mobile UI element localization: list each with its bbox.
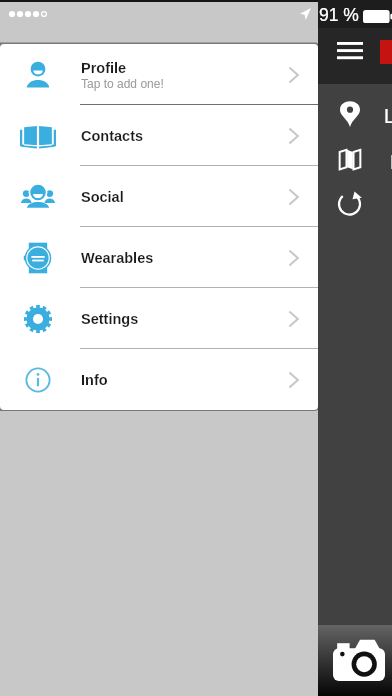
button[interactable]: Wearables: [0, 227, 318, 288]
staticText: Tap to add one!: [81, 77, 164, 90]
button[interactable]: Settings: [0, 288, 318, 349]
staticText: Profile: [81, 60, 127, 76]
staticText: Info: [81, 372, 108, 388]
button[interactable]: Map: [318, 137, 392, 181]
staticText: Map: [390, 151, 392, 173]
staticText: 91 %: [319, 5, 359, 25]
button[interactable]: Locations: [318, 89, 392, 133]
button[interactable]: Refresh: [318, 181, 392, 225]
staticText: Wearables: [81, 250, 154, 266]
button[interactable]: Open navigation menu: [337, 42, 363, 60]
button[interactable]: Camera: [333, 639, 385, 681]
staticText: Contacts: [81, 128, 144, 144]
staticText: Locations: [384, 105, 392, 127]
button[interactable]: Social: [0, 166, 318, 227]
button[interactable]: Info: [0, 349, 318, 410]
staticText: Settings: [81, 311, 139, 327]
button[interactable]: Contacts: [0, 105, 318, 166]
button[interactable]: Profile: [0, 44, 318, 105]
staticText: Social: [81, 189, 124, 205]
